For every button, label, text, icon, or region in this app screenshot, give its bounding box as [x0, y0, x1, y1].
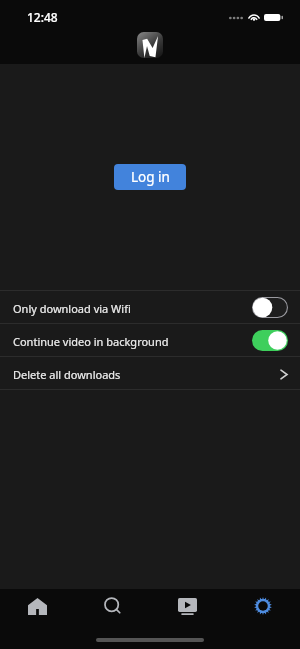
- staticText: Log in: [131, 168, 170, 186]
- button[interactable]: Log in: [114, 164, 186, 190]
- button[interactable]: Continue video in background: [0, 324, 300, 356]
- button[interactable]: Library: [150, 589, 225, 623]
- staticText: Delete all downloads: [13, 367, 121, 382]
- button[interactable]: Only download via Wifi: [0, 291, 300, 323]
- staticText: Continue video in background: [13, 334, 169, 349]
- button[interactable]: Home: [0, 589, 75, 623]
- button[interactable]: Settings: [225, 589, 300, 623]
- staticText: Only download via Wifi: [13, 301, 131, 316]
- button[interactable]: Delete all downloads: [0, 357, 300, 389]
- staticText: 12:48: [27, 9, 58, 25]
- button[interactable]: Search: [75, 589, 150, 623]
